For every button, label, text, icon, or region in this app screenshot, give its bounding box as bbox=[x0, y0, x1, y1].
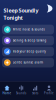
staticText: Evening & sleep talking bbox=[13, 39, 47, 42]
button[interactable]: White noise & sounds bbox=[2, 25, 54, 34]
staticText: Sounds bbox=[16, 91, 26, 95]
staticText: Gentle sunrise alarm bbox=[13, 61, 44, 64]
staticText: White noise & sounds bbox=[13, 28, 45, 31]
staticText: Stats bbox=[32, 91, 38, 95]
button[interactable]: Stats bbox=[28, 82, 42, 98]
button[interactable]: Profile bbox=[42, 82, 56, 98]
button[interactable]: Sounds bbox=[14, 82, 28, 98]
staticText: Tonight bbox=[3, 14, 22, 21]
button[interactable]: Track your sleep quality bbox=[2, 47, 54, 56]
staticText: Sleep Soundly bbox=[3, 7, 38, 14]
button[interactable]: Gentle sunrise alarm bbox=[2, 58, 54, 67]
staticText: Home bbox=[2, 91, 11, 95]
button[interactable]: Evening & sleep talking bbox=[2, 36, 54, 45]
staticText: Track your sleep quality bbox=[13, 50, 46, 53]
button[interactable]: Home bbox=[0, 82, 14, 98]
staticText: Profile bbox=[44, 91, 54, 95]
